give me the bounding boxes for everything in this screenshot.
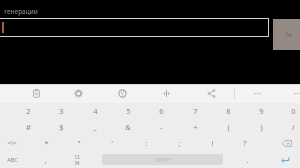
staticText: * — [44, 138, 49, 148]
button[interactable]: 6 — [145, 103, 177, 119]
button[interactable]: 3 — [45, 103, 77, 119]
button[interactable]: Clipboard — [24, 84, 48, 103]
button[interactable]: 8 — [212, 103, 244, 119]
staticText: + — [193, 122, 198, 132]
staticText: генерации — [4, 7, 38, 16]
button[interactable]: Number pad — [64, 151, 90, 168]
button[interactable]: More — [245, 84, 269, 103]
button[interactable]: . — [236, 151, 258, 168]
staticText: ) — [260, 122, 263, 132]
staticText: ? — [243, 138, 247, 148]
staticText: 6 — [159, 106, 164, 116]
staticText: 12 — [74, 154, 80, 160]
staticText: 7 — [193, 106, 198, 116]
staticText: ABC — [7, 156, 18, 163]
staticText: ! — [211, 138, 214, 148]
button[interactable]: - — [145, 119, 177, 135]
staticText: : — [145, 138, 148, 148]
button[interactable]: ) — [245, 119, 277, 135]
staticText: ; — [178, 138, 181, 148]
button[interactable]: , — [32, 151, 58, 168]
staticText: , — [44, 155, 47, 165]
button[interactable]: $ — [45, 119, 77, 135]
button[interactable]: ! — [196, 135, 228, 151]
button[interactable]: Backspace — [273, 135, 300, 151]
button[interactable]: 0 — [277, 103, 300, 119]
button[interactable]: ABC — [0, 151, 24, 168]
staticText: 34 — [74, 160, 80, 166]
button[interactable]: 9 — [245, 103, 277, 119]
button[interactable]: + — [179, 119, 211, 135]
button[interactable]: ? — [229, 135, 261, 151]
staticText: _ — [93, 122, 97, 132]
staticText: - — [160, 122, 163, 132]
button[interactable] — [0, 18, 269, 37]
button[interactable]: Voice input — [154, 84, 178, 103]
button[interactable]: : — [130, 135, 162, 151]
button[interactable]: # — [12, 119, 44, 135]
staticText: 2 — [26, 106, 31, 116]
button[interactable]: =\< — [0, 135, 24, 151]
button[interactable]: Stickers — [110, 84, 134, 103]
button[interactable]: More options — [285, 84, 300, 103]
button[interactable]: & — [112, 119, 144, 135]
button[interactable]: 5 — [112, 103, 144, 119]
staticText: " — [77, 138, 81, 148]
staticText: 0 — [291, 106, 296, 116]
button[interactable]: Share — [199, 84, 223, 103]
staticText: 5 — [126, 106, 131, 116]
button[interactable]: " — [63, 135, 95, 151]
staticText: SWIFTY — [155, 157, 171, 163]
button[interactable]: ( — [212, 119, 244, 135]
staticText: 3 — [59, 106, 64, 116]
staticText: ( — [227, 122, 230, 132]
button[interactable]: 2 — [12, 103, 44, 119]
button[interactable]: _ — [79, 119, 111, 135]
button[interactable]: 7 — [179, 103, 211, 119]
button[interactable]: Settings — [66, 84, 90, 103]
staticText: ' — [111, 138, 113, 148]
staticText: 9 — [259, 106, 264, 116]
staticText: Ге — [285, 31, 292, 39]
staticText: $ — [59, 122, 64, 132]
button[interactable]: Enter — [270, 151, 300, 168]
button[interactable]: / — [277, 119, 300, 135]
staticText: # — [26, 122, 31, 132]
staticText: 4 — [93, 106, 98, 116]
staticText: 8 — [226, 106, 231, 116]
button[interactable]: 4 — [79, 103, 111, 119]
button[interactable]: ; — [163, 135, 195, 151]
staticText: . — [246, 155, 249, 165]
button[interactable]: * — [30, 135, 62, 151]
staticText: =\< — [7, 139, 17, 147]
staticText: & — [125, 122, 131, 132]
staticText: / — [292, 122, 295, 132]
